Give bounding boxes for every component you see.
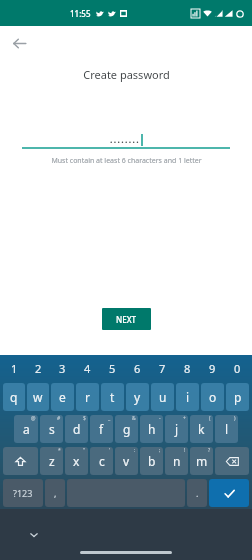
button[interactable]: z — [40, 447, 63, 475]
button[interactable]: i — [176, 383, 199, 411]
staticText: t — [110, 389, 115, 405]
staticText: , — [54, 487, 57, 499]
button[interactable]: g — [115, 415, 138, 443]
button[interactable]: e — [51, 383, 74, 411]
staticText: 9 — [209, 361, 216, 376]
button[interactable]: u — [151, 383, 174, 411]
button[interactable]: 2 — [26, 355, 50, 381]
button[interactable]: d — [65, 415, 88, 443]
staticText: ! — [184, 447, 186, 454]
staticText: 5 — [109, 361, 116, 376]
button[interactable]: x — [65, 447, 88, 475]
button[interactable]: w — [27, 383, 49, 411]
button[interactable]: 7 — [150, 355, 175, 381]
staticText: p — [234, 389, 242, 405]
staticText: b — [148, 453, 156, 469]
staticText: q — [10, 389, 18, 405]
staticText: k — [198, 421, 205, 437]
staticText: $ — [83, 415, 86, 422]
staticText: ' — [109, 447, 111, 454]
button[interactable]: c — [90, 447, 113, 475]
button[interactable]: t — [101, 383, 124, 411]
staticText: h — [148, 421, 156, 437]
button[interactable]: l — [215, 415, 238, 443]
staticText: z — [49, 453, 55, 469]
staticText: 4 — [84, 361, 91, 376]
staticText: n — [173, 453, 181, 469]
button[interactable]: Shift — [3, 447, 38, 475]
staticText: j — [175, 421, 179, 437]
staticText: 11:55 — [70, 8, 91, 19]
staticText: 2 — [35, 361, 42, 376]
staticText: 8 — [184, 361, 191, 376]
button[interactable]: p — [226, 383, 249, 411]
staticText: f — [99, 421, 104, 437]
button[interactable]: j — [165, 415, 188, 443]
button[interactable]: Period — [187, 479, 207, 507]
button[interactable]: n — [165, 447, 188, 475]
staticText: o — [209, 389, 217, 405]
button[interactable]: 4 — [75, 355, 100, 381]
button[interactable]: 8 — [175, 355, 200, 381]
button[interactable]: 1 — [2, 355, 26, 381]
button[interactable]: NEXT — [102, 308, 151, 330]
staticText: ; — [159, 447, 161, 454]
staticText: c — [99, 453, 105, 469]
button[interactable]: o — [201, 383, 224, 411]
staticText: & — [132, 415, 136, 422]
staticText: - — [159, 415, 161, 422]
button[interactable]: Back — [6, 30, 32, 56]
staticText: g — [123, 421, 131, 437]
button[interactable]: k — [190, 415, 213, 443]
staticText: i — [186, 389, 190, 405]
button[interactable]: b — [140, 447, 163, 475]
button[interactable]: Enter — [209, 479, 249, 507]
staticText: # — [57, 415, 61, 422]
staticText: @ — [31, 415, 36, 422]
staticText: v — [123, 453, 130, 469]
button[interactable]: 9 — [200, 355, 225, 381]
staticText: l — [225, 421, 229, 437]
button[interactable]: 6 — [125, 355, 150, 381]
staticText: x — [73, 453, 80, 469]
button[interactable]: Comma — [45, 479, 65, 507]
staticText: 6 — [134, 361, 141, 376]
staticText: y — [134, 389, 141, 405]
button[interactable]: y — [126, 383, 149, 411]
button[interactable]: f — [90, 415, 113, 443]
staticText: u — [159, 389, 167, 405]
staticText: e — [59, 389, 66, 405]
staticText: Create password — [83, 67, 170, 82]
button[interactable]: r — [76, 383, 99, 411]
button[interactable]: v — [115, 447, 138, 475]
staticText: _ — [108, 415, 111, 422]
button[interactable]: 5 — [100, 355, 125, 381]
staticText: a — [23, 421, 30, 437]
staticText: r — [85, 389, 90, 405]
staticText: s — [49, 421, 55, 437]
staticText: 3 — [59, 361, 66, 376]
button[interactable]: Hide keyboard — [26, 527, 42, 543]
staticText: ( — [209, 415, 211, 422]
staticText: d — [73, 421, 81, 437]
button[interactable]: h — [140, 415, 163, 443]
button[interactable]: 0 — [225, 355, 250, 381]
staticText: * — [58, 447, 61, 454]
staticText: 1 — [11, 361, 18, 376]
staticText: + — [183, 415, 186, 422]
staticText: ? — [208, 447, 211, 454]
button[interactable]: q — [3, 383, 25, 411]
staticText: m — [196, 453, 208, 469]
button[interactable] — [22, 127, 230, 149]
staticText: w — [33, 389, 43, 405]
button[interactable]: 3 — [50, 355, 75, 381]
button[interactable]: Backspace — [215, 447, 249, 475]
staticText: " — [83, 447, 86, 454]
button[interactable]: ?123 — [3, 479, 43, 507]
button[interactable]: a — [14, 415, 38, 443]
button[interactable]: s — [40, 415, 63, 443]
staticText: : — [134, 447, 136, 454]
button[interactable]: m — [190, 447, 213, 475]
staticText: 7 — [159, 361, 166, 376]
